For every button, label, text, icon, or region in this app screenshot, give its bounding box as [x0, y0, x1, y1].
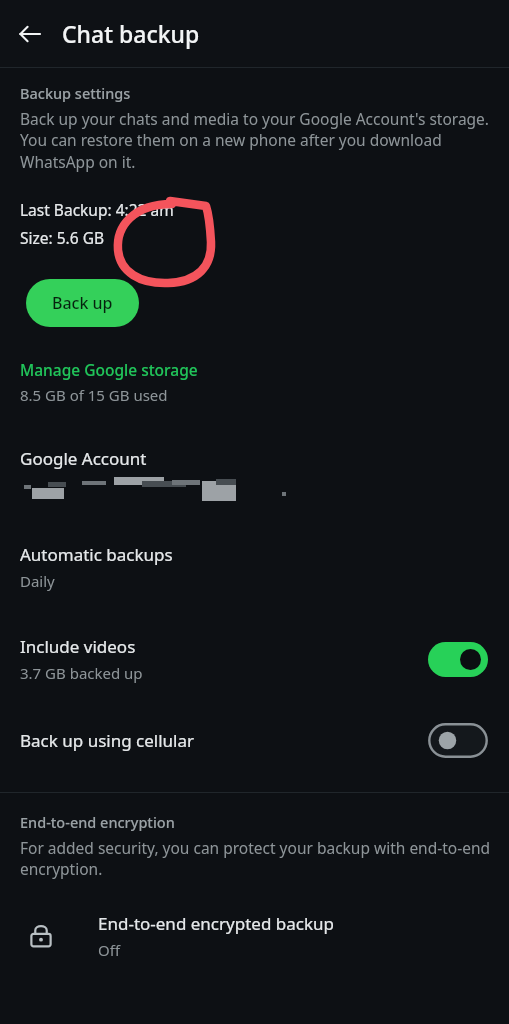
staticText: Chat backup: [62, 18, 200, 49]
button[interactable]: Automatic backups: [0, 539, 509, 595]
staticText: Size: 5.6 GB: [20, 227, 104, 248]
staticText: Include videos: [20, 635, 136, 658]
staticText: Last Backup: 4:22 am: [20, 199, 174, 220]
button[interactable]: End-to-end encrypted backup: [0, 906, 509, 966]
other: On: [428, 642, 488, 677]
staticText: For added security, you can protect your…: [20, 837, 492, 880]
staticText: 3.7 GB backed up: [20, 663, 143, 683]
staticText: End-to-end encryption: [20, 812, 175, 832]
staticText: 8.5 GB of 15 GB used: [20, 385, 168, 405]
staticText: Back up your chats and media to your Goo…: [20, 108, 492, 173]
staticText: Off: [98, 940, 121, 960]
button[interactable]: Include videos: [0, 631, 509, 687]
staticText: Back up: [52, 292, 113, 314]
staticText: Backup settings: [20, 83, 131, 103]
button[interactable]: Back up: [26, 279, 139, 327]
other: Off: [428, 723, 488, 758]
staticText: Manage Google storage: [20, 359, 198, 380]
staticText: End-to-end encrypted backup: [98, 912, 334, 935]
staticText: Automatic backups: [20, 543, 173, 566]
button[interactable]: Google Account: [0, 443, 509, 505]
staticText: Back up using cellular: [20, 729, 195, 752]
staticText: Google Account: [20, 447, 147, 470]
button[interactable]: Manage Google storage: [0, 355, 509, 409]
button[interactable]: Back: [7, 11, 53, 57]
staticText: Daily: [20, 571, 55, 591]
button[interactable]: Back up using cellular: [0, 719, 509, 762]
